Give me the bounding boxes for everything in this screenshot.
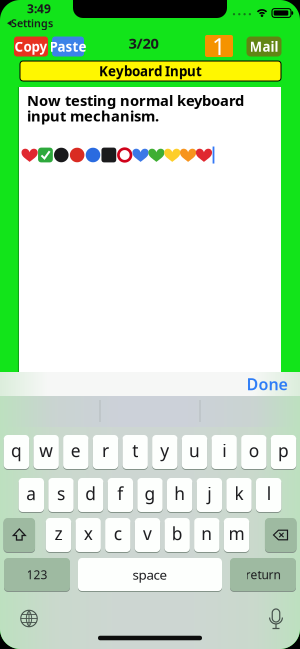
staticText: h — [174, 482, 185, 505]
staticText: d — [85, 482, 96, 505]
staticText: r — [102, 439, 109, 462]
staticText: 3/20 — [128, 33, 158, 53]
staticText: x — [84, 522, 93, 545]
staticText: p — [278, 439, 289, 462]
staticText: n — [201, 522, 212, 545]
staticText: i — [222, 439, 226, 462]
staticText: y — [160, 439, 169, 462]
staticText: e — [71, 439, 81, 462]
staticText: l — [267, 482, 271, 505]
staticText: u — [189, 439, 200, 462]
staticText: z — [54, 522, 62, 545]
staticText: 1 — [212, 30, 226, 62]
staticText: g — [144, 482, 155, 505]
staticText: 3:49 — [27, 0, 51, 16]
staticText: v — [143, 522, 152, 545]
staticText: t — [132, 439, 138, 462]
staticText: return — [245, 566, 280, 582]
staticText: m — [228, 522, 244, 545]
staticText: Paste — [49, 38, 86, 55]
staticText: a — [26, 482, 36, 505]
staticText: f — [117, 482, 123, 505]
staticText: c — [114, 522, 122, 545]
staticText: o — [249, 439, 259, 462]
staticText: space — [132, 566, 167, 583]
staticText: Mail — [249, 38, 278, 55]
staticText: Copy — [14, 38, 47, 55]
staticText: b — [172, 522, 183, 545]
staticText: q — [11, 439, 22, 462]
staticText: Now testing normal keyboard — [27, 90, 244, 110]
staticText: w — [39, 439, 53, 462]
staticText: Done — [246, 373, 287, 395]
staticText: 123 — [26, 566, 47, 582]
staticText: input mechanism. — [27, 106, 159, 125]
staticText: s — [57, 482, 65, 505]
staticText: j — [207, 482, 211, 505]
staticText: k — [234, 482, 243, 505]
staticText: Settings — [11, 16, 53, 30]
staticText: Keyboard Input — [99, 62, 202, 80]
